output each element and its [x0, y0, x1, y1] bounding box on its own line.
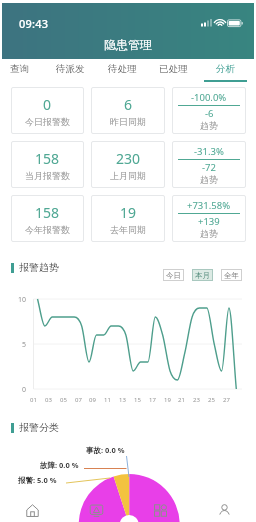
staticText: 事故: 0.0 %	[86, 445, 125, 455]
button[interactable]: 230	[91, 141, 165, 188]
staticText: 已处理	[159, 63, 188, 75]
button[interactable]: 待处理	[97, 62, 148, 82]
button[interactable]: 6	[91, 87, 165, 134]
staticText: 11	[104, 396, 111, 404]
staticText: 报警: 5.0 %	[18, 475, 57, 485]
staticText: -6	[205, 107, 214, 120]
staticText: 10	[18, 295, 27, 305]
button[interactable]: 分析	[200, 62, 251, 82]
staticText: 25	[208, 396, 215, 404]
staticText: 待处理	[108, 63, 137, 75]
button[interactable]: 已处理	[148, 62, 199, 82]
button[interactable]: -31.3%	[172, 141, 246, 188]
staticText: 230	[116, 149, 141, 168]
staticText: 27	[223, 396, 230, 404]
staticText: +731.58%	[187, 199, 231, 212]
staticText: 报警分类	[19, 421, 59, 434]
staticText: 13	[119, 396, 126, 404]
staticText: 0	[22, 385, 27, 395]
button[interactable]: Home	[0, 498, 64, 522]
staticText: 5	[22, 340, 27, 350]
staticText: 待派发	[56, 63, 85, 75]
button[interactable]: 158	[11, 141, 84, 188]
staticText: 07	[75, 396, 82, 404]
staticText: 隐患管理	[104, 37, 152, 52]
staticText: -100.0%	[191, 91, 227, 104]
button[interactable]: 待派发	[45, 62, 96, 82]
staticText: 分析	[216, 63, 235, 75]
staticText: 21	[178, 396, 185, 404]
staticText: 今日报警数	[25, 116, 70, 127]
staticText: 19	[164, 396, 171, 404]
staticText: 故障: 0.0 %	[40, 460, 79, 470]
staticText: 全年	[224, 271, 239, 280]
staticText: 03	[45, 396, 52, 404]
staticText: 15	[134, 396, 141, 404]
staticText: 01	[30, 396, 37, 404]
staticText: 今日	[166, 271, 181, 280]
button[interactable]: Monitor	[64, 498, 128, 522]
staticText: -31.3%	[194, 145, 224, 158]
button[interactable]: 本月	[192, 269, 213, 281]
staticText: 6	[124, 95, 133, 114]
staticText: 趋势	[200, 174, 218, 185]
button[interactable]: 0	[11, 87, 84, 134]
button[interactable]: +731.58%	[172, 195, 246, 242]
button[interactable]: 158	[11, 195, 84, 242]
staticText: 09:43	[19, 16, 49, 31]
button[interactable]: -100.0%	[172, 87, 246, 134]
staticText: 当月报警数	[25, 170, 70, 181]
button[interactable]: 全年	[221, 269, 242, 281]
staticText: 今年报警数	[25, 224, 70, 235]
staticText: 本月	[195, 271, 210, 280]
button[interactable]: Apps	[128, 498, 192, 522]
staticText: 报警趋势	[19, 261, 59, 274]
staticText: 趋势	[200, 228, 218, 239]
staticText: 19	[120, 203, 137, 222]
staticText: 17	[149, 396, 156, 404]
button[interactable]: Profile	[192, 498, 256, 522]
staticText: 09	[89, 396, 96, 404]
staticText: 去年同期	[110, 224, 146, 235]
button[interactable]: 查询	[0, 62, 45, 82]
staticText: 158	[35, 203, 60, 222]
staticText: 查询	[10, 63, 29, 75]
staticText: 05	[60, 396, 67, 404]
staticText: 23	[193, 396, 200, 404]
staticText: 上月同期	[110, 170, 146, 181]
staticText: 昨日同期	[110, 116, 146, 127]
staticText: 0	[43, 95, 52, 114]
staticText: 158	[35, 149, 60, 168]
staticText: +139	[198, 215, 220, 228]
button[interactable]: 今日	[163, 269, 184, 281]
button[interactable]: 19	[91, 195, 165, 242]
staticText: -72	[202, 161, 216, 174]
staticText: 趋势	[200, 120, 218, 131]
